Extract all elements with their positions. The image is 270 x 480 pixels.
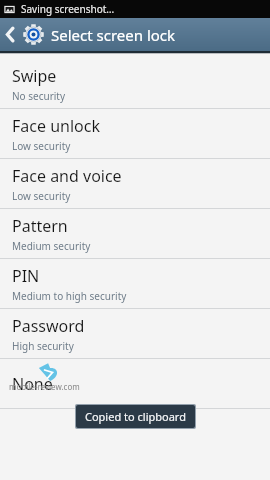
button[interactable]: Password	[0, 309, 270, 358]
staticText: Pattern	[12, 215, 68, 237]
staticText: Medium security	[12, 239, 91, 253]
staticText: No security	[12, 89, 66, 103]
staticText: Face unlock	[12, 115, 100, 137]
button[interactable]: None	[0, 359, 270, 408]
staticText: Medium to high security	[12, 289, 127, 303]
staticText: High security	[12, 339, 74, 353]
button[interactable]: Face unlock	[0, 109, 270, 158]
staticText: Select screen lock	[51, 25, 176, 45]
staticText: PIN	[12, 265, 40, 287]
staticText: None	[12, 373, 53, 395]
button[interactable]: Settings	[20, 18, 47, 51]
button[interactable]: Back	[0, 18, 20, 51]
staticText: Face and voice	[12, 165, 122, 187]
button[interactable]: PIN	[0, 259, 270, 308]
staticText: Low security	[12, 139, 71, 153]
button[interactable]: Swipe	[0, 59, 270, 108]
button[interactable]: Pattern	[0, 209, 270, 258]
staticText: Password	[12, 315, 85, 337]
button[interactable]: Face and voice	[0, 159, 270, 208]
staticText: Copied to clipboard	[85, 409, 186, 424]
staticText: Low security	[12, 189, 71, 203]
staticText: Saving screenshot…	[21, 2, 115, 16]
staticText: Swipe	[12, 65, 57, 87]
staticText: mobile-review.com	[9, 381, 80, 392]
